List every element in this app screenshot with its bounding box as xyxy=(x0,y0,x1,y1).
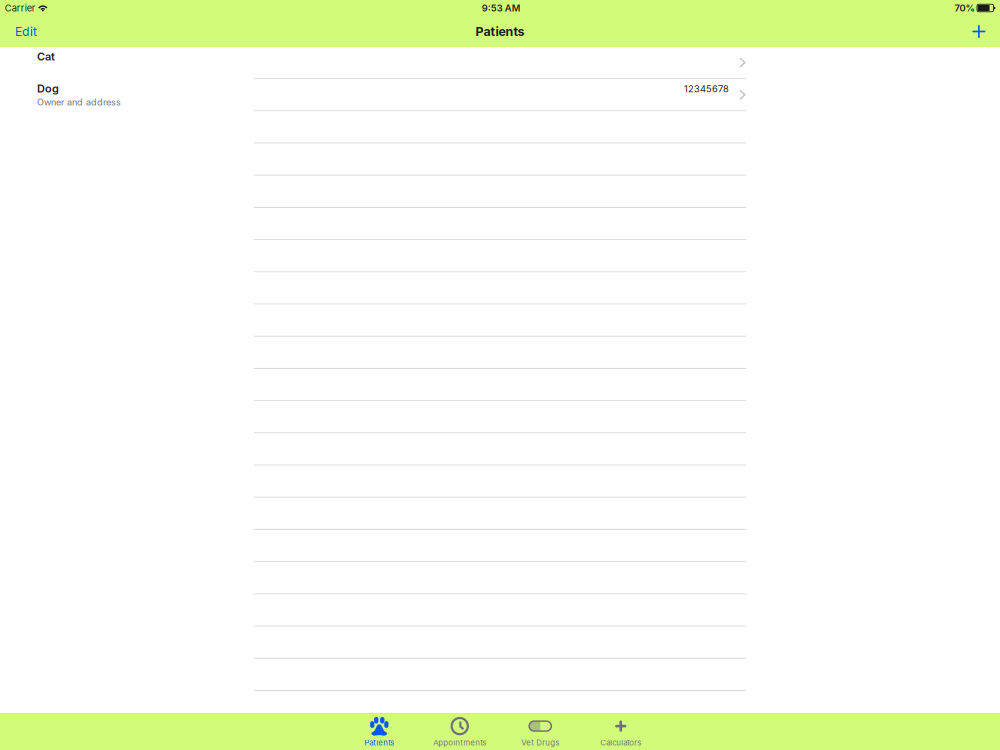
staticText: Edit xyxy=(15,24,37,39)
staticText: Vet Drugs xyxy=(521,738,559,747)
staticText: 12345678 xyxy=(684,83,729,94)
staticText: Dog xyxy=(37,82,59,95)
staticText: Calculators xyxy=(600,738,641,747)
button[interactable]: Add patient xyxy=(965,16,993,47)
button[interactable]: Dog xyxy=(0,79,1000,110)
staticText: Cat xyxy=(37,50,55,63)
staticText: Appointments xyxy=(433,738,486,747)
staticText: 70% xyxy=(954,2,974,14)
staticText: Carrier xyxy=(5,2,36,14)
staticText: Owner and address xyxy=(37,97,121,108)
staticText: Patients xyxy=(364,738,394,747)
button[interactable]: Patients xyxy=(339,714,419,750)
staticText: 9:53 AM xyxy=(482,2,521,14)
button[interactable]: Cat xyxy=(0,47,1000,78)
button[interactable]: Calculators xyxy=(580,714,661,750)
button[interactable]: Appointments xyxy=(419,714,500,750)
button[interactable]: Edit xyxy=(7,16,45,47)
button[interactable]: Vet Drugs xyxy=(500,714,580,750)
staticText: Patients xyxy=(475,24,524,39)
